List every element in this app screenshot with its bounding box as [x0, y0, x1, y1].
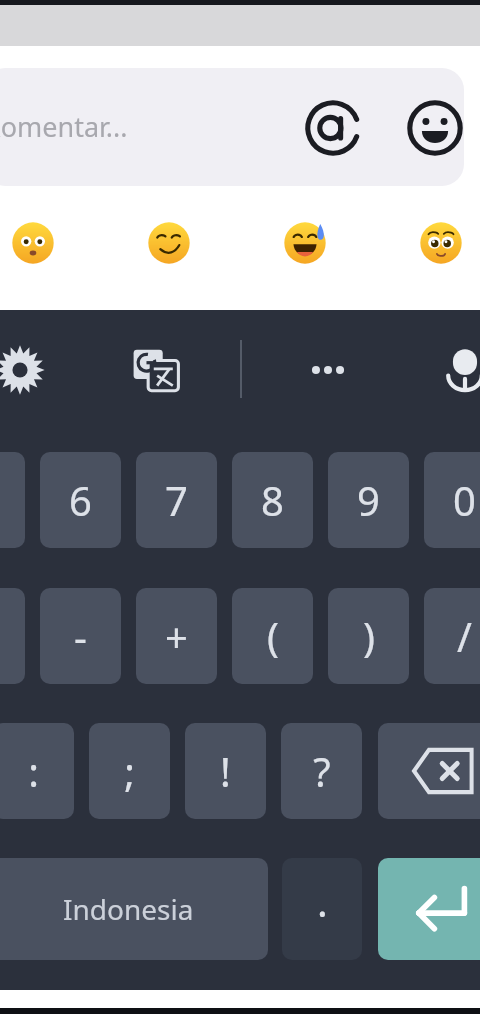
button[interactable]: 7: [136, 452, 217, 548]
button[interactable]: !: [185, 723, 266, 819]
button[interactable]: Emoji suggestion 4: [419, 221, 463, 265]
button[interactable]: 6: [40, 452, 121, 548]
staticText: .: [317, 874, 328, 928]
staticText: (: [267, 609, 279, 663]
button[interactable]: -: [40, 588, 121, 684]
button[interactable]: [0, 68, 464, 186]
button[interactable]: 8: [232, 452, 313, 548]
button[interactable]: .: [282, 858, 362, 960]
button[interactable]: More options: [300, 342, 356, 398]
staticText: Tulis komentar...: [0, 108, 128, 145]
button[interactable]: Mention someone: [303, 98, 363, 158]
staticText: +: [165, 609, 188, 663]
staticText: 8: [261, 473, 284, 527]
staticText: /: [457, 609, 472, 663]
button[interactable]: Emoji: [405, 98, 465, 158]
button[interactable]: (: [232, 588, 313, 684]
button[interactable]: 0: [424, 452, 480, 548]
staticText: 9: [357, 473, 380, 527]
button[interactable]: +: [136, 588, 217, 684]
button[interactable]: ;: [89, 723, 170, 819]
button[interactable]: Voice input: [437, 342, 480, 398]
button[interactable]: ?: [281, 723, 362, 819]
button[interactable]: 9: [328, 452, 409, 548]
button[interactable]: Translate: [128, 342, 184, 398]
button[interactable]: Emoji suggestion 1: [11, 221, 55, 265]
staticText: 6: [69, 473, 92, 527]
button[interactable]: Emoji suggestion 2: [147, 221, 191, 265]
staticText: ): [363, 609, 375, 663]
button[interactable]: Indonesia: [0, 858, 268, 960]
button[interactable]: &: [0, 588, 25, 684]
staticText: 7: [165, 473, 188, 527]
staticText: Indonesia: [63, 890, 194, 928]
staticText: 0: [453, 473, 476, 527]
button[interactable]: Enter: [378, 858, 480, 960]
staticText: -: [74, 609, 87, 663]
button[interactable]: :: [0, 723, 74, 819]
staticText: ;: [124, 744, 135, 798]
staticText: :: [28, 744, 39, 798]
staticText: ?: [313, 744, 331, 798]
button[interactable]: Backspace: [378, 723, 480, 819]
button[interactable]: 5: [0, 452, 25, 548]
button[interactable]: /: [424, 588, 480, 684]
button[interactable]: Emoji suggestion 3: [283, 221, 327, 265]
button[interactable]: ): [328, 588, 409, 684]
button[interactable]: Keyboard settings: [0, 342, 48, 398]
staticText: !: [220, 744, 231, 798]
